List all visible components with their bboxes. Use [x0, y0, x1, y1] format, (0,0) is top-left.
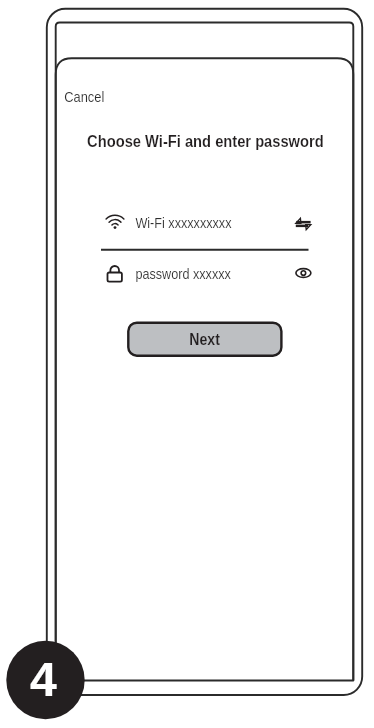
button[interactable]: Choose Wi-Fi network: [101, 205, 309, 245]
button[interactable]: Cancel: [61, 82, 111, 108]
button[interactable]: Enter password: [101, 255, 309, 293]
button[interactable]: Next: [128, 322, 282, 356]
